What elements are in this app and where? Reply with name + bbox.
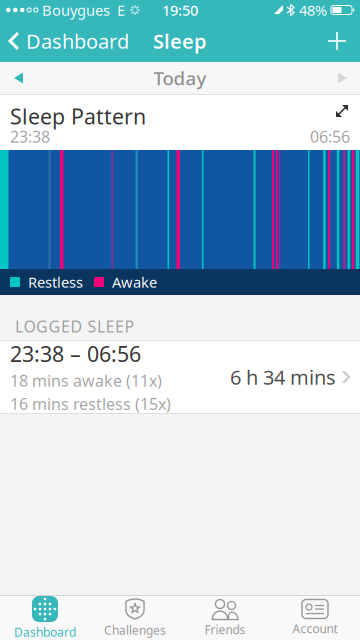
- staticText: LOGGED SLEEP: [15, 316, 134, 337]
- staticText: Sleep: [153, 28, 207, 54]
- button[interactable]: Dashboard: [0, 596, 90, 640]
- button[interactable]: [0, 72, 23, 83]
- staticText: Account: [292, 620, 337, 636]
- staticText: 18 mins awake (11x): [10, 370, 162, 391]
- staticText: E: [117, 0, 125, 20]
- staticText: 48%: [299, 0, 327, 20]
- staticText: Today: [153, 66, 206, 90]
- staticText: 19:50: [162, 0, 198, 20]
- staticText: 16 mins restless (15x): [10, 393, 171, 414]
- staticText: Bouygues: [42, 0, 110, 20]
- staticText: 6 h 34 mins: [230, 364, 336, 390]
- staticText: Challenges: [104, 622, 166, 638]
- staticText: 23:38 – 06:56: [10, 340, 141, 368]
- button[interactable]: Dashboard: [0, 28, 129, 54]
- staticText: 06:56: [310, 126, 350, 147]
- staticText: 23:38: [10, 126, 50, 147]
- staticText: Sleep Pattern: [10, 102, 146, 130]
- button[interactable]: Challenges: [90, 596, 180, 640]
- staticText: Restless: [28, 272, 83, 292]
- staticText: Awake: [112, 272, 157, 292]
- button[interactable]: Friends: [180, 596, 270, 640]
- button[interactable]: [338, 72, 360, 83]
- button[interactable]: [335, 95, 360, 118]
- button[interactable]: [328, 32, 360, 50]
- staticText: Dashboard: [14, 624, 76, 640]
- staticText: Friends: [204, 621, 245, 637]
- staticText: Dashboard: [26, 28, 129, 54]
- button[interactable]: 23:38 – 06:56: [0, 341, 360, 413]
- button[interactable]: Account: [270, 596, 360, 640]
